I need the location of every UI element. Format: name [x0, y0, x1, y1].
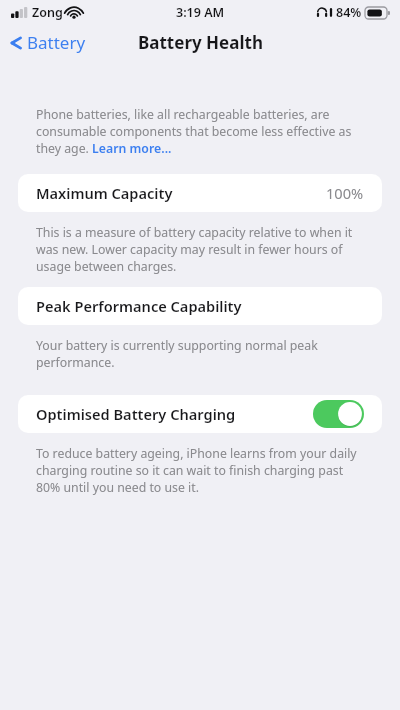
- staticText: Your battery is currently supporting nor…: [36, 337, 366, 371]
- staticText: This is a measure of battery capacity re…: [36, 224, 366, 275]
- button[interactable]: Optimised Battery Charging toggle, on: [313, 400, 364, 428]
- staticText: 100%: [326, 183, 364, 203]
- staticText: 84%: [336, 4, 362, 21]
- staticText: To reduce battery ageing, iPhone learns …: [36, 445, 366, 496]
- staticText: Maximum Capacity: [36, 183, 173, 203]
- staticText: Optimised Battery Charging: [36, 404, 236, 424]
- staticText: Zong: [32, 4, 63, 21]
- staticText: 3:19 AM: [176, 4, 225, 21]
- button[interactable]: Peak Performance Capability: [18, 287, 382, 325]
- staticText: Battery: [27, 31, 86, 54]
- staticText: Phone batteries, like all rechargeable b…: [36, 106, 366, 157]
- staticText: Battery Health: [138, 31, 263, 54]
- button[interactable]: Battery: [0, 27, 94, 58]
- staticText: Peak Performance Capability: [36, 296, 242, 316]
- button[interactable]: Maximum Capacity: [18, 174, 382, 212]
